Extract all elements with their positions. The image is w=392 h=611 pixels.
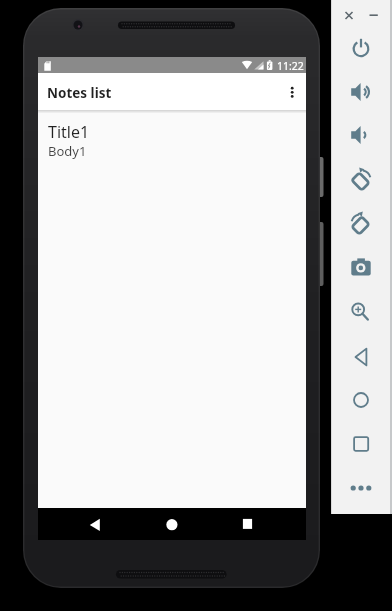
button[interactable] <box>339 5 359 25</box>
button[interactable] <box>343 292 379 328</box>
button[interactable] <box>343 250 379 286</box>
button[interactable] <box>343 206 379 242</box>
button[interactable] <box>233 508 263 540</box>
button[interactable] <box>343 30 379 66</box>
button[interactable] <box>343 470 379 506</box>
button[interactable] <box>343 117 379 153</box>
button[interactable] <box>343 162 379 198</box>
button[interactable] <box>280 76 304 106</box>
staticText: Title1 <box>48 121 90 143</box>
button[interactable] <box>343 426 379 462</box>
button[interactable] <box>343 74 379 110</box>
staticText: 11:22 <box>277 59 304 73</box>
staticText: Notes list <box>47 84 112 102</box>
staticText: Body1 <box>48 142 87 160</box>
button[interactable] <box>363 5 383 25</box>
button[interactable] <box>343 382 379 418</box>
button[interactable] <box>157 508 187 540</box>
button[interactable] <box>343 339 379 375</box>
button[interactable] <box>80 508 110 540</box>
button[interactable]: Title1 <box>38 114 306 168</box>
